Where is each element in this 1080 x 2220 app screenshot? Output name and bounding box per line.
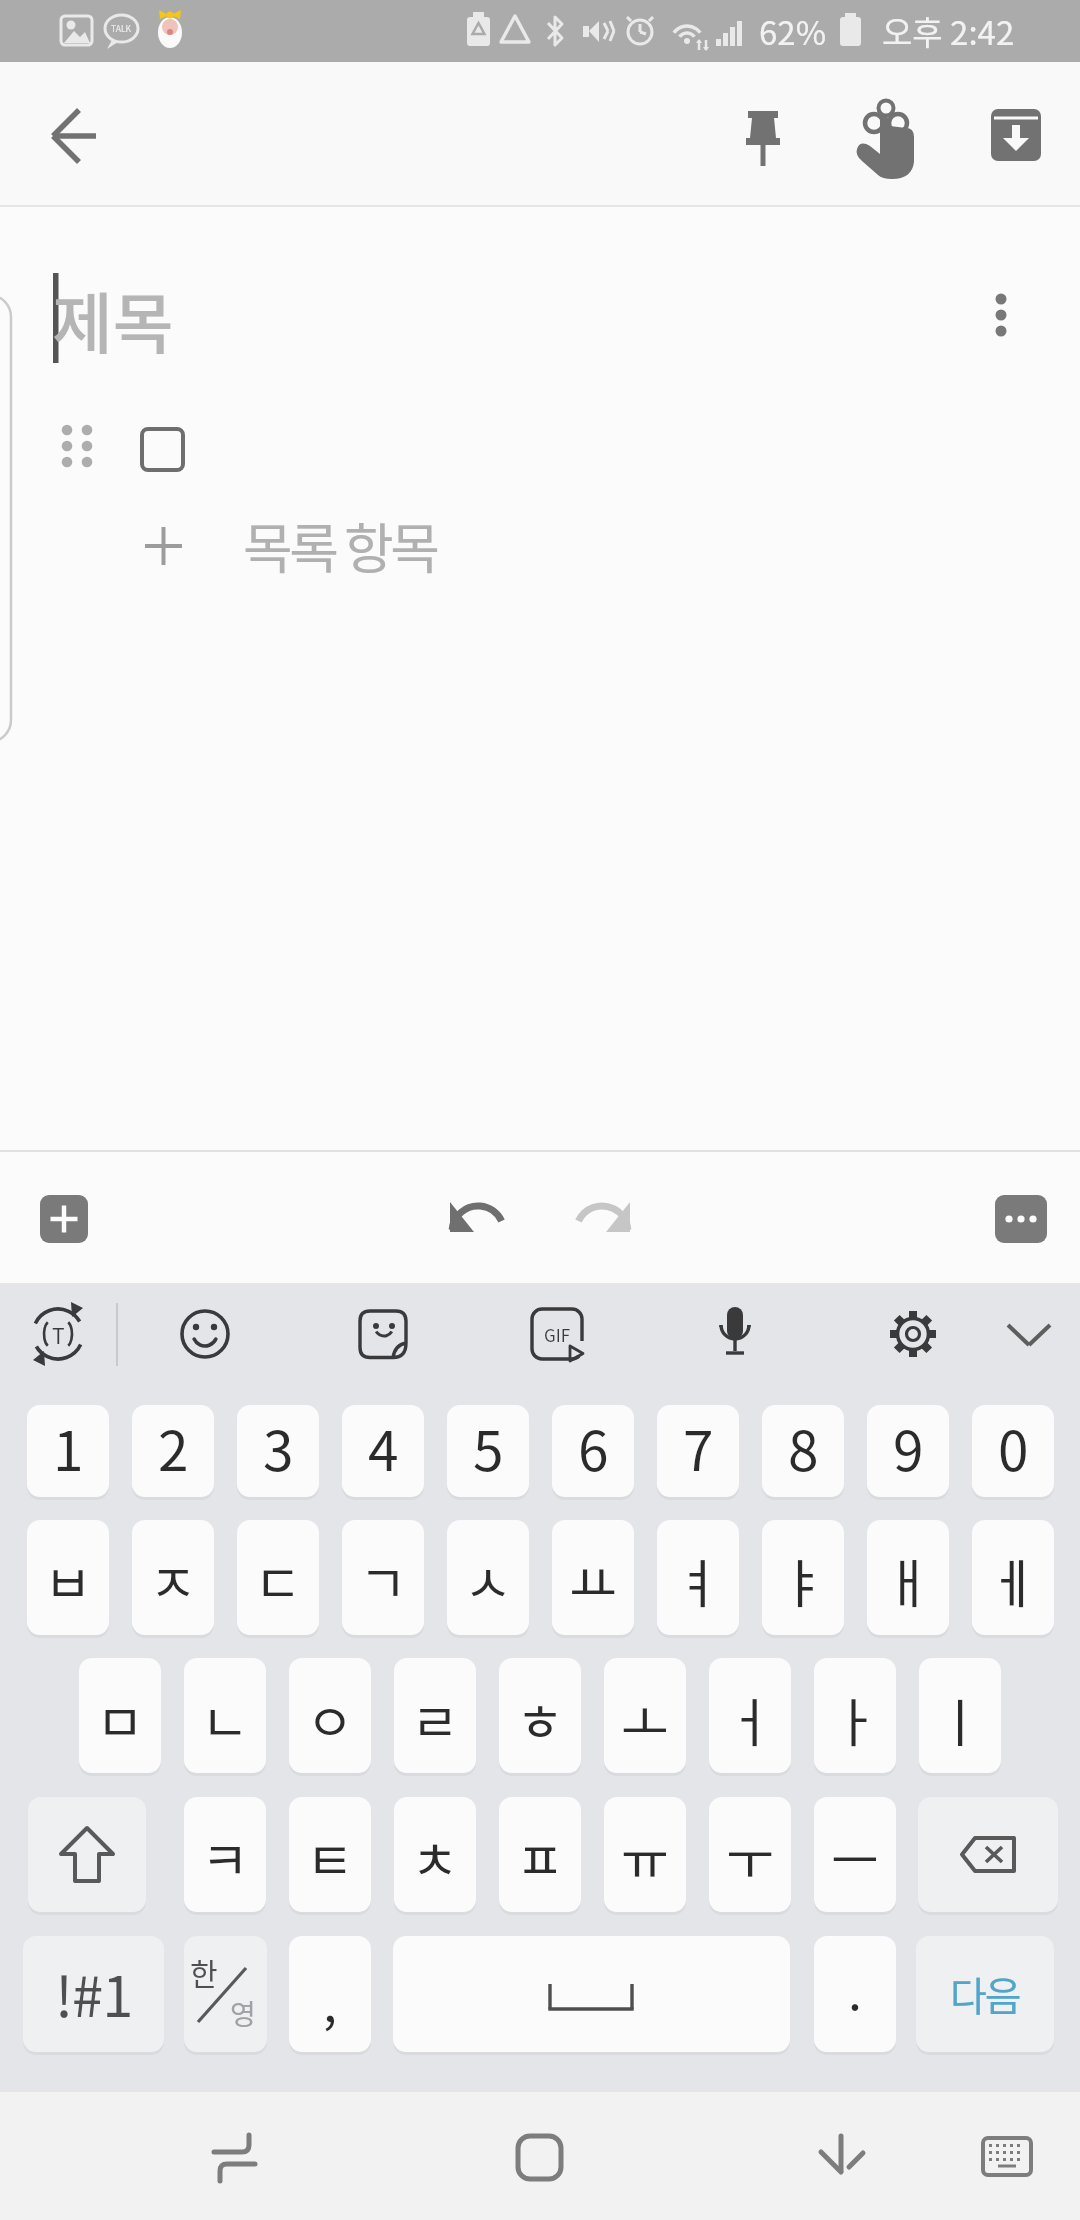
staticText: !#1 [55,1952,133,2033]
button[interactable]: ㅈ [132,1520,214,1635]
staticText: ㅑ [779,1543,827,1618]
staticText: GIF [544,1322,571,1347]
staticText: ㅎ [516,1682,564,1757]
staticText: 3 [263,1407,294,1487]
staticText: ㄷ [254,1543,302,1618]
staticText: 오후 2:42 [882,7,1015,55]
button[interactable] [185,2107,285,2207]
button[interactable]: ㅏ [814,1658,896,1773]
staticText: 한 [190,1950,218,1990]
staticText: ㅌ [306,1820,354,1895]
staticText: 다음 [950,1965,1020,2023]
staticText: 제목 [52,271,174,367]
staticText: 목록 항목 [243,506,437,584]
button[interactable]: 6 [552,1405,634,1497]
button[interactable]: ㄱ [342,1520,424,1635]
staticText: ㅈ [149,1543,197,1618]
staticText: ㅓ [726,1682,774,1757]
button[interactable] [28,1797,146,1912]
button[interactable] [690,1289,780,1379]
button[interactable]: ㅔ [972,1520,1054,1635]
button[interactable]: ㅜ [709,1797,791,1912]
button[interactable]: ㅣ [919,1658,1001,1773]
staticText: ㅕ [674,1543,722,1618]
button[interactable] [25,87,125,187]
button[interactable]: ㄴ [184,1658,266,1773]
button[interactable] [338,1289,428,1379]
button[interactable] [40,1195,88,1243]
button[interactable] [984,1289,1074,1379]
button[interactable]: , [289,1936,371,2052]
button[interactable]: ㅊ [394,1797,476,1912]
staticText: ㅇ [306,1682,354,1757]
button[interactable]: ㅂ [27,1520,109,1635]
staticText: ㅁ [96,1682,144,1757]
staticText: 8 [788,1407,819,1487]
button[interactable]: ㅕ [657,1520,739,1635]
staticText: 7 [683,1407,714,1487]
button[interactable] [555,1180,655,1270]
button[interactable] [918,1797,1058,1912]
button[interactable]: 3 [237,1405,319,1497]
button[interactable]: ㅓ [709,1658,791,1773]
button[interactable]: 1 [27,1405,109,1497]
button[interactable] [13,1289,103,1379]
staticText: TALK [111,22,131,34]
button[interactable] [430,1180,530,1270]
button[interactable] [160,1289,250,1379]
button[interactable]: 2 [132,1405,214,1497]
button[interactable]: 목록 항목 [243,504,503,586]
button[interactable]: ㅡ [814,1797,896,1912]
staticText: 9 [893,1407,924,1487]
button[interactable] [140,427,185,472]
button[interactable]: 0 [972,1405,1054,1497]
staticText: . [848,1952,862,2024]
button[interactable]: ㄷ [237,1520,319,1635]
button[interactable] [961,269,1041,369]
staticText: 6 [578,1407,609,1487]
staticText: ㅋ [201,1820,249,1895]
staticText: ㅍ [516,1820,564,1895]
button[interactable]: 4 [342,1405,424,1497]
staticText: ㅏ [831,1682,879,1757]
button[interactable] [512,1289,602,1379]
button[interactable]: ㅠ [604,1797,686,1912]
button[interactable] [393,1936,790,2052]
button[interactable] [490,2107,590,2207]
button[interactable]: ㅅ [447,1520,529,1635]
button[interactable]: !#1 [23,1936,164,2052]
button[interactable]: ㅎ [499,1658,581,1773]
staticText: ㅛ [569,1543,617,1618]
button[interactable]: ㅛ [552,1520,634,1635]
button[interactable] [713,87,813,187]
button[interactable] [995,1195,1047,1243]
button[interactable] [966,87,1066,187]
button[interactable]: 8 [762,1405,844,1497]
button[interactable]: ㄹ [394,1658,476,1773]
staticText: ㄹ [411,1682,459,1757]
button[interactable]: ㅇ [289,1658,371,1773]
button[interactable]: ㅍ [499,1797,581,1912]
button[interactable]: 7 [657,1405,739,1497]
button[interactable]: ㅑ [762,1520,844,1635]
button[interactable] [868,1289,958,1379]
staticText: 0 [998,1407,1029,1487]
button[interactable] [836,87,936,187]
button[interactable]: 9 [867,1405,949,1497]
button[interactable]: ㅋ [184,1797,266,1912]
button[interactable]: ㅐ [867,1520,949,1635]
staticText: 62% [759,7,827,55]
button[interactable]: . [814,1936,896,2052]
staticText: 영 [230,1993,256,2034]
staticText: 5 [473,1407,504,1487]
button[interactable]: 다음 [916,1936,1054,2052]
staticText: ㄴ [201,1682,249,1757]
button[interactable]: 한 [184,1936,267,2052]
button[interactable]: ㅗ [604,1658,686,1773]
button[interactable] [790,2107,890,2207]
staticText: ㅠ [621,1820,669,1895]
button[interactable]: 5 [447,1405,529,1497]
button[interactable]: ㅁ [79,1658,161,1773]
button[interactable]: ㅌ [289,1797,371,1912]
button[interactable] [960,2107,1050,2207]
